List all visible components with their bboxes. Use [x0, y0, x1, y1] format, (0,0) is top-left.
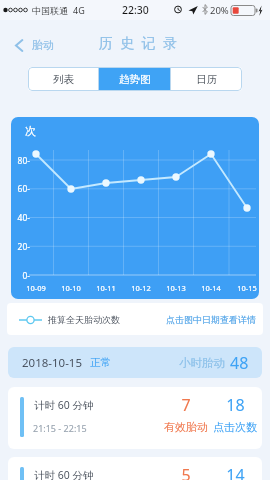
staticText: 7	[181, 394, 191, 416]
staticText: 推算全天胎动次数	[48, 314, 120, 325]
staticText: 21:15 - 22:15	[33, 422, 87, 434]
staticText: 正常	[90, 356, 111, 369]
staticText: 10-13	[166, 283, 186, 293]
button[interactable]: 列表	[28, 67, 98, 91]
button[interactable]: 点击图中日期查看详情	[166, 314, 263, 325]
staticText: 10-09	[26, 283, 46, 293]
staticText: 点击次数	[213, 420, 257, 434]
staticText: 历史记录	[95, 35, 181, 53]
staticText: 中国联通	[32, 5, 68, 16]
staticText: 日历	[196, 73, 217, 86]
staticText: 18	[226, 394, 245, 416]
button[interactable]: 计时 60 分钟	[8, 457, 262, 480]
staticText: 2018-10-15	[22, 355, 83, 371]
staticText: 14	[226, 464, 245, 480]
staticText: 48	[230, 352, 249, 374]
staticText: 列表	[53, 73, 74, 86]
staticText: 4G	[73, 4, 85, 16]
staticText: 小时胎动	[179, 356, 225, 370]
staticText: 10-10	[61, 283, 81, 293]
button[interactable]: Back	[10, 35, 60, 55]
staticText: 有效胎动	[164, 420, 208, 434]
staticText: 40-	[17, 212, 30, 224]
staticText: 趋势图	[119, 73, 151, 86]
staticText: 点击图中日期查看详情	[166, 314, 256, 325]
button[interactable]: 2018-10-15	[8, 347, 262, 378]
staticText: 22:30	[122, 3, 149, 17]
staticText: 10-11	[96, 283, 116, 293]
button[interactable]: 计时 60 分钟	[8, 387, 262, 449]
button[interactable]: 日历	[171, 67, 242, 91]
staticText: 计时 60 分钟	[34, 468, 94, 480]
staticText: 60-	[17, 183, 30, 195]
staticText: 20-	[17, 241, 30, 253]
staticText: 胎动	[32, 38, 54, 52]
button[interactable]: 趋势图	[99, 67, 170, 91]
staticText: 计时 60 分钟	[34, 398, 94, 412]
staticText: 0-	[22, 270, 30, 282]
staticText: 10-12	[131, 283, 151, 293]
staticText: 80-	[17, 155, 30, 167]
staticText: 10-14	[201, 283, 221, 293]
staticText: 10-15	[237, 283, 257, 293]
staticText: 次	[25, 124, 36, 138]
staticText: 5	[181, 464, 191, 480]
staticText: 20%	[210, 4, 229, 17]
